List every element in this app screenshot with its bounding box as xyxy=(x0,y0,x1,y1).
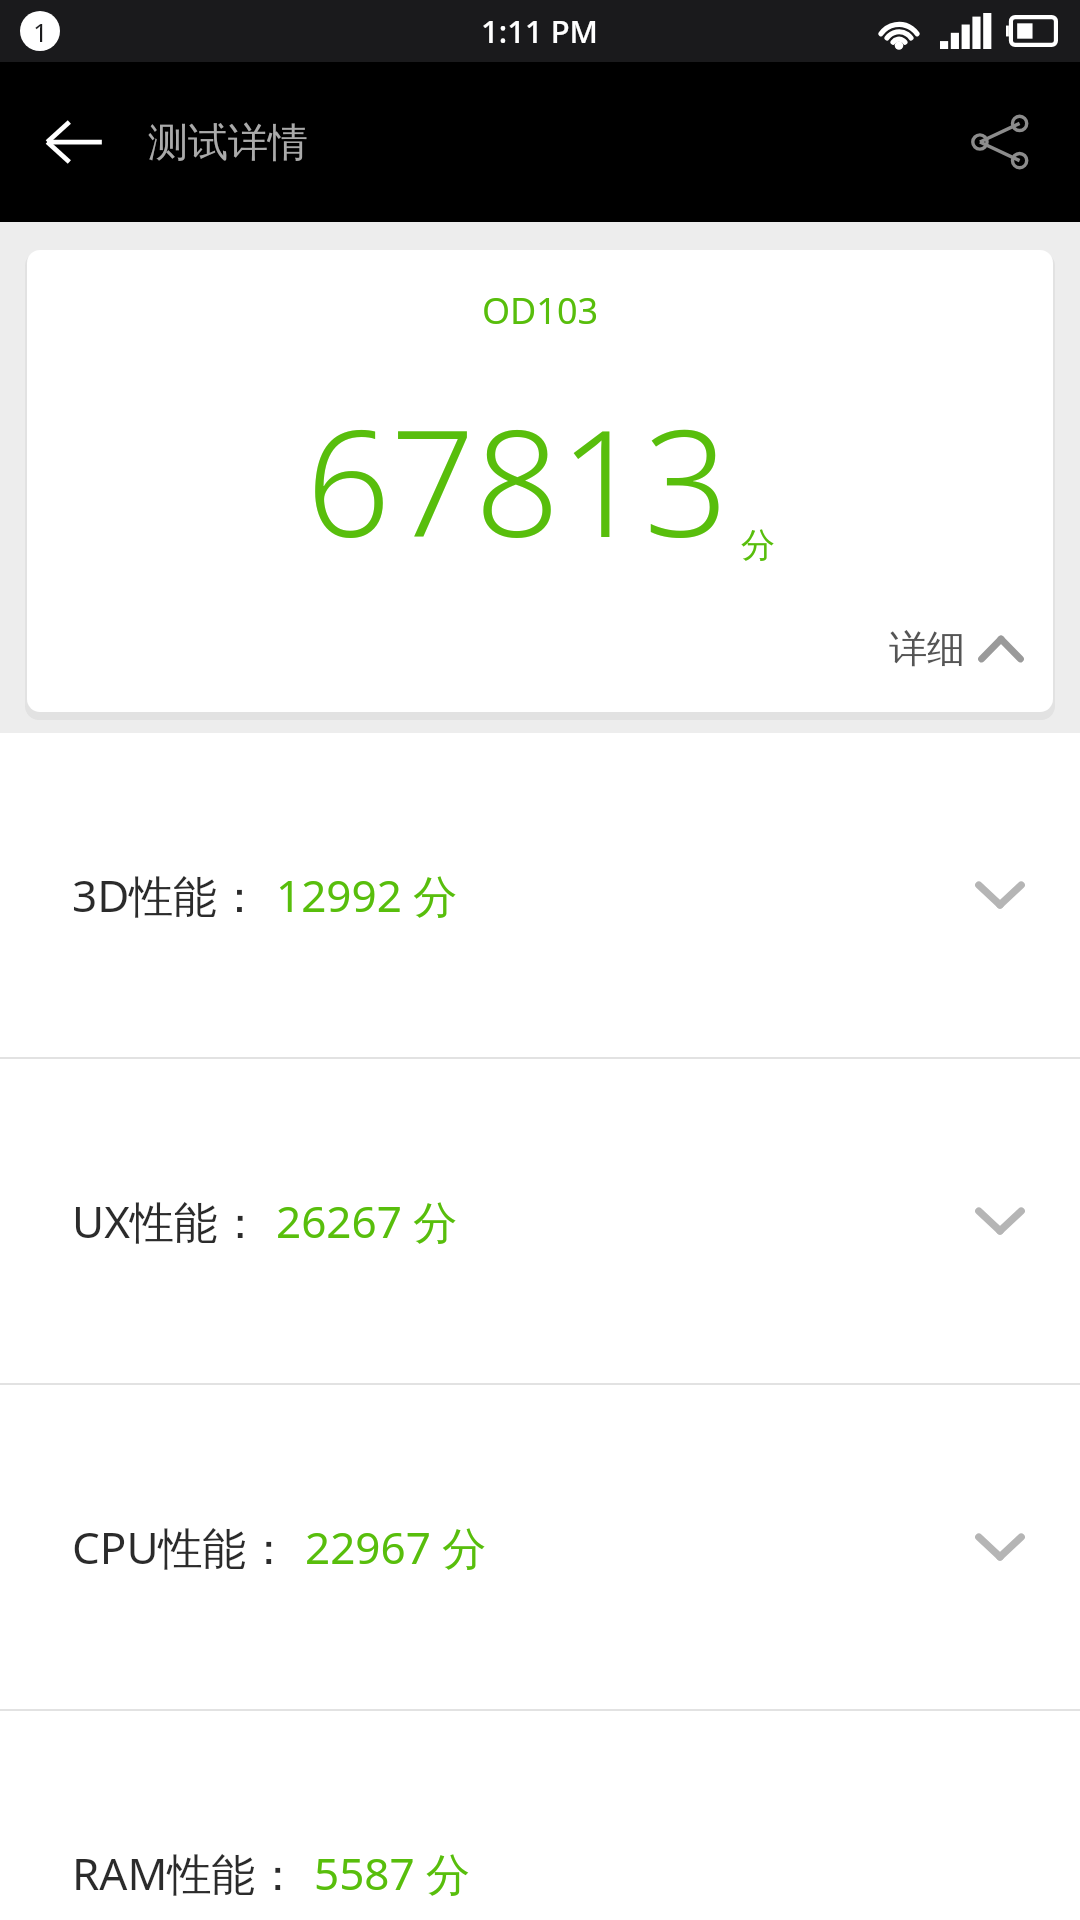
button[interactable]: OD103 xyxy=(27,250,1053,712)
staticText: 详细 xyxy=(889,625,965,673)
staticText: 5587 分 xyxy=(314,1843,471,1903)
staticText: OD103 xyxy=(27,286,1053,335)
staticText: 1 xyxy=(33,14,48,49)
staticText: CPU性能： xyxy=(72,1517,291,1577)
staticText: 3D性能： xyxy=(72,865,262,925)
button[interactable]: CPU性能： xyxy=(0,1385,1080,1709)
staticText: 12992 分 xyxy=(276,865,458,925)
staticText: 26267 分 xyxy=(276,1191,458,1251)
button[interactable]: Share xyxy=(958,99,1044,185)
staticText: 67813 xyxy=(306,379,729,581)
staticText: 1:11 PM xyxy=(481,10,599,52)
staticText: RAM性能： xyxy=(72,1843,300,1903)
staticText: UX性能： xyxy=(72,1191,262,1251)
staticText: 测试详情 xyxy=(148,117,308,167)
button[interactable]: 详细 xyxy=(889,625,1023,673)
staticText: 分 xyxy=(741,524,775,567)
button[interactable]: 3D性能： xyxy=(0,733,1080,1057)
button[interactable]: RAM性能： xyxy=(0,1711,1080,1920)
staticText: 22967 分 xyxy=(305,1517,487,1577)
button[interactable]: Back xyxy=(34,102,114,182)
button[interactable]: UX性能： xyxy=(0,1059,1080,1383)
